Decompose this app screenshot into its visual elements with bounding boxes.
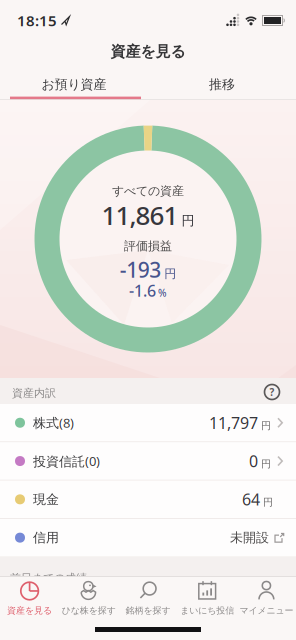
staticText: 前日までの成績 bbox=[10, 571, 87, 585]
staticText: 円 bbox=[263, 496, 273, 508]
staticText: 銘柄を探す bbox=[125, 605, 170, 616]
staticText: -1.6 bbox=[129, 280, 156, 301]
staticText: 評価損益 bbox=[124, 239, 172, 253]
staticText: お預り資産 bbox=[41, 76, 106, 92]
staticText: 投資信託(0) bbox=[33, 452, 100, 470]
button[interactable]: 推移 bbox=[148, 69, 296, 100]
staticText: 現金 bbox=[33, 491, 59, 507]
staticText: 資産を見る bbox=[110, 42, 185, 61]
staticText: 64 bbox=[242, 489, 260, 510]
button[interactable]: ひな株を探す bbox=[59, 578, 118, 618]
staticText: 円 bbox=[164, 266, 176, 281]
staticText: まいにち投信 bbox=[180, 605, 234, 616]
button[interactable]: お預り資産 bbox=[0, 69, 148, 100]
button[interactable]: まいにち投信 bbox=[178, 578, 237, 618]
button[interactable]: 資産を見る bbox=[0, 578, 59, 618]
staticText: 円 bbox=[261, 419, 271, 432]
staticText: 株式(8) bbox=[33, 414, 74, 431]
staticText: % bbox=[158, 286, 167, 299]
button[interactable]: 投資信託(0) bbox=[0, 442, 296, 480]
staticText: 0 bbox=[249, 450, 258, 472]
staticText: 未開設 bbox=[230, 530, 269, 546]
button[interactable]: ヘルプ bbox=[263, 383, 280, 400]
staticText: 円 bbox=[181, 213, 194, 229]
staticText: すべての資産 bbox=[112, 184, 184, 198]
staticText: 11,861 bbox=[101, 198, 178, 232]
button[interactable]: 銘柄を探す bbox=[118, 578, 178, 618]
staticText: マイメニュー bbox=[239, 605, 293, 616]
staticText: -193 bbox=[120, 256, 161, 283]
staticText: 円 bbox=[261, 458, 271, 470]
button[interactable]: マイメニュー bbox=[237, 578, 296, 618]
button[interactable]: 信用 bbox=[0, 519, 296, 556]
staticText: 18:15 bbox=[17, 10, 57, 30]
staticText: 信用 bbox=[33, 530, 59, 546]
button[interactable]: 現金 bbox=[0, 481, 296, 518]
staticText: 推移 bbox=[209, 76, 235, 92]
button[interactable]: 株式(8) bbox=[0, 404, 296, 441]
staticText: ひな株を探す bbox=[62, 605, 116, 616]
staticText: 資産を見る bbox=[7, 605, 52, 616]
staticText: 資産内訳 bbox=[12, 386, 56, 400]
staticText: ? bbox=[269, 385, 274, 399]
staticText: 11,797 bbox=[209, 412, 258, 433]
